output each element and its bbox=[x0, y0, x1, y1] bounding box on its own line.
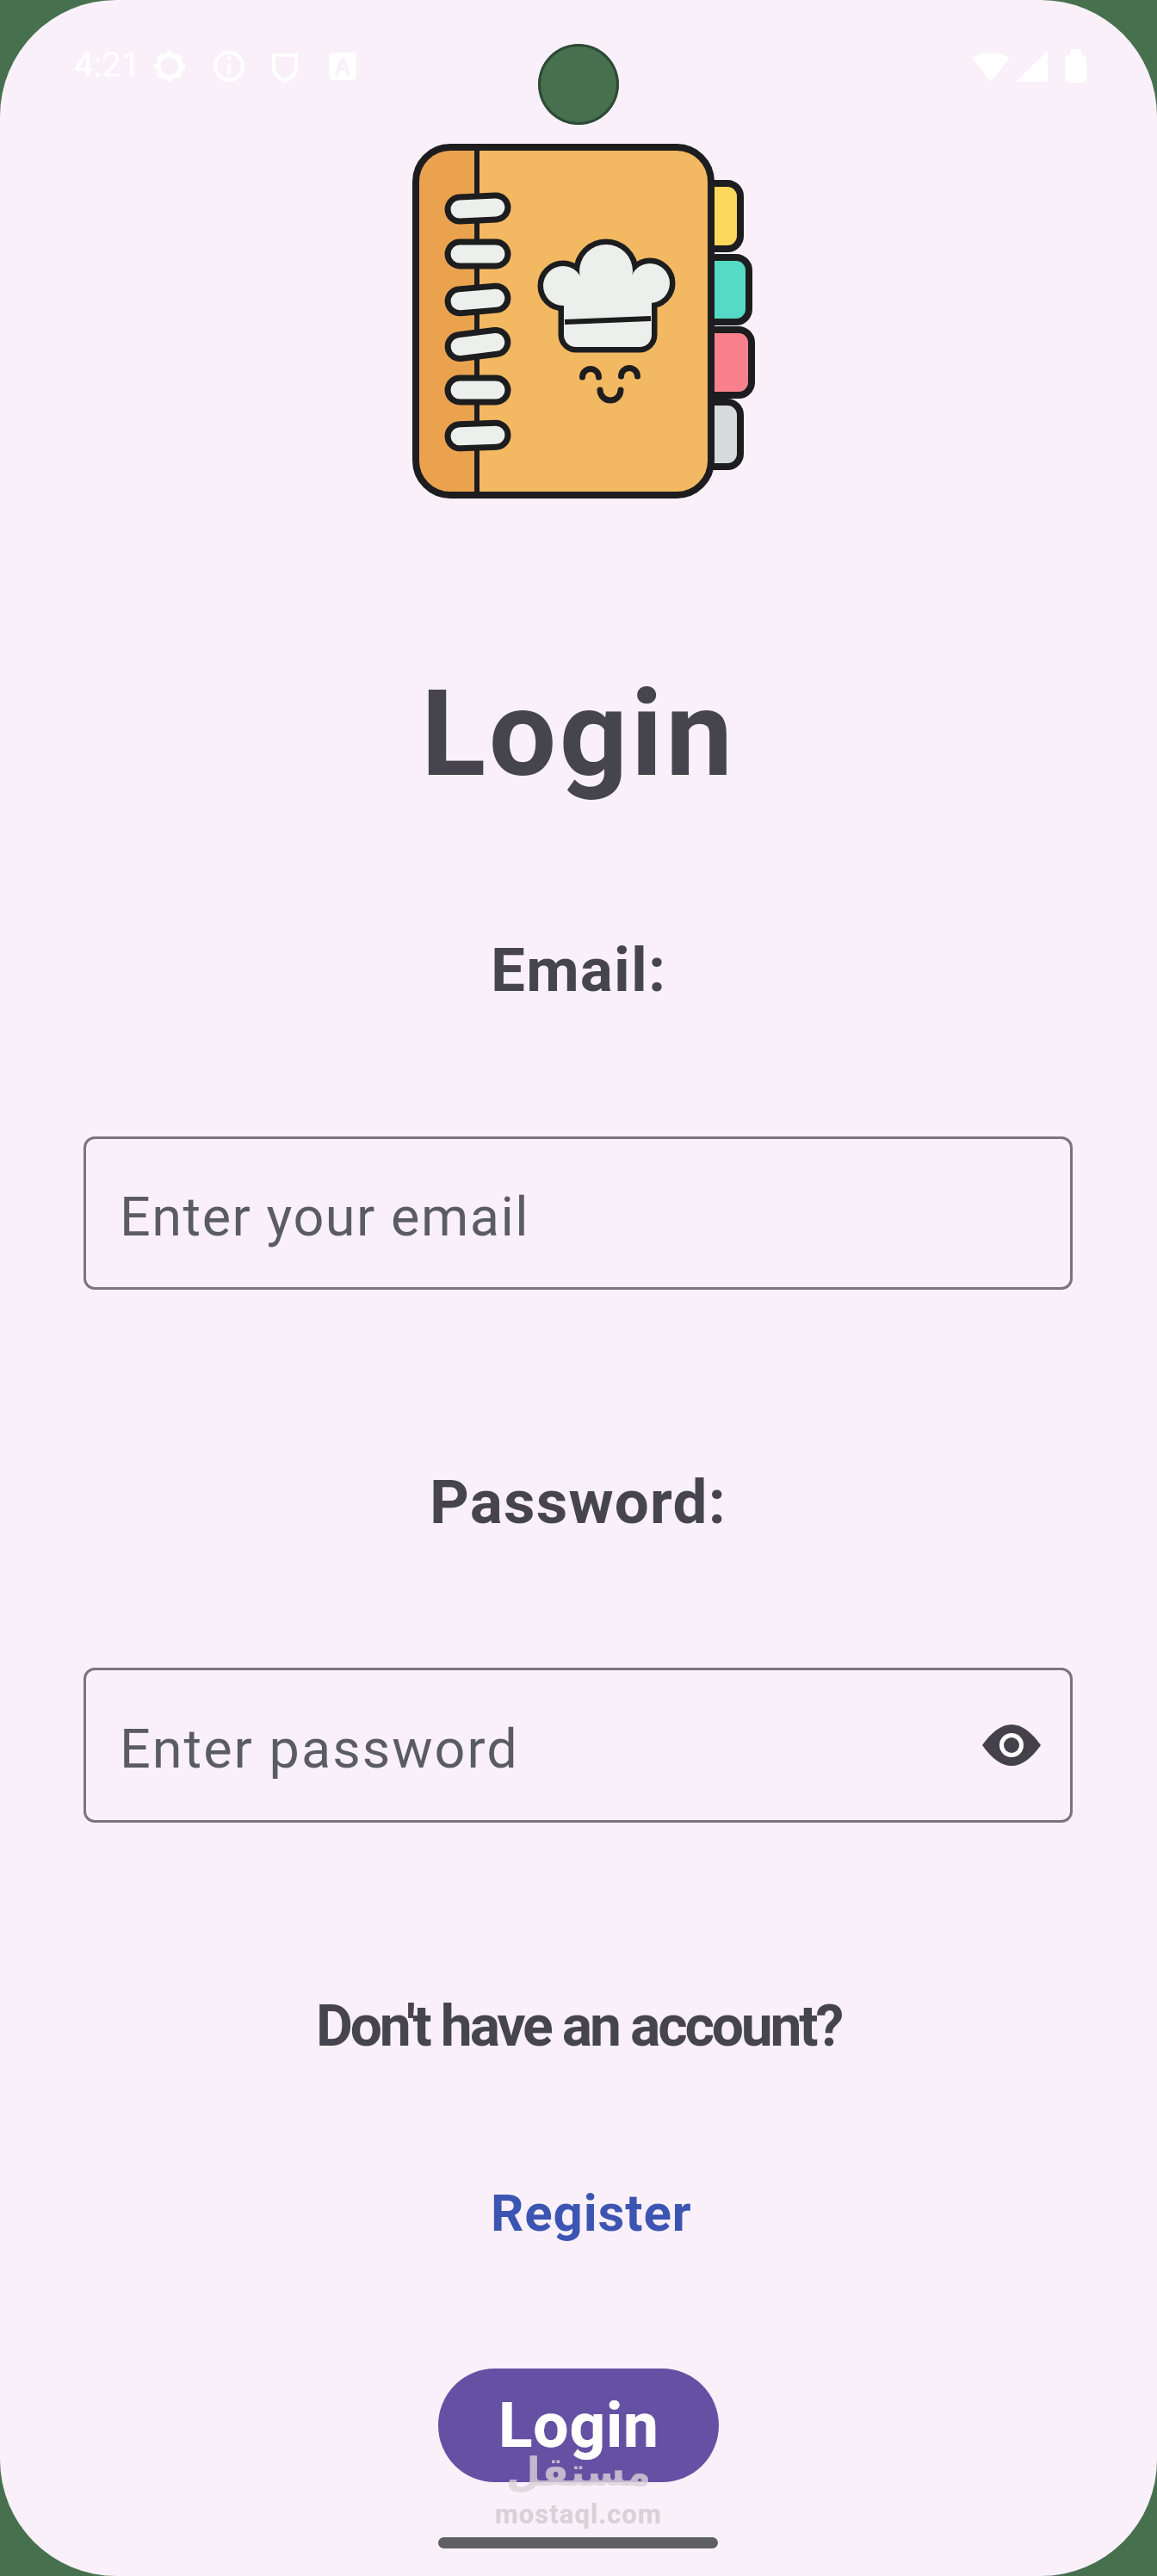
staticText: مستقل bbox=[506, 2449, 652, 2495]
staticText: Enter password bbox=[120, 1718, 519, 1781]
staticText: Email: bbox=[491, 934, 667, 1006]
staticText: 4:21 bbox=[74, 45, 141, 85]
button[interactable]: Enter password bbox=[84, 1668, 1073, 1823]
staticText: Password: bbox=[430, 1466, 727, 1538]
button[interactable]: Login bbox=[438, 2369, 719, 2482]
staticText: Don't have an account? bbox=[316, 1993, 842, 2059]
button[interactable]: Enter your email bbox=[84, 1136, 1073, 1290]
button[interactable]: Register bbox=[491, 2183, 692, 2243]
staticText: Login bbox=[421, 664, 736, 804]
staticText: Login bbox=[498, 2388, 659, 2462]
staticText: mostaql.com bbox=[495, 2499, 662, 2530]
staticText: Enter your email bbox=[120, 1186, 530, 1249]
button[interactable] bbox=[982, 1725, 1041, 1766]
